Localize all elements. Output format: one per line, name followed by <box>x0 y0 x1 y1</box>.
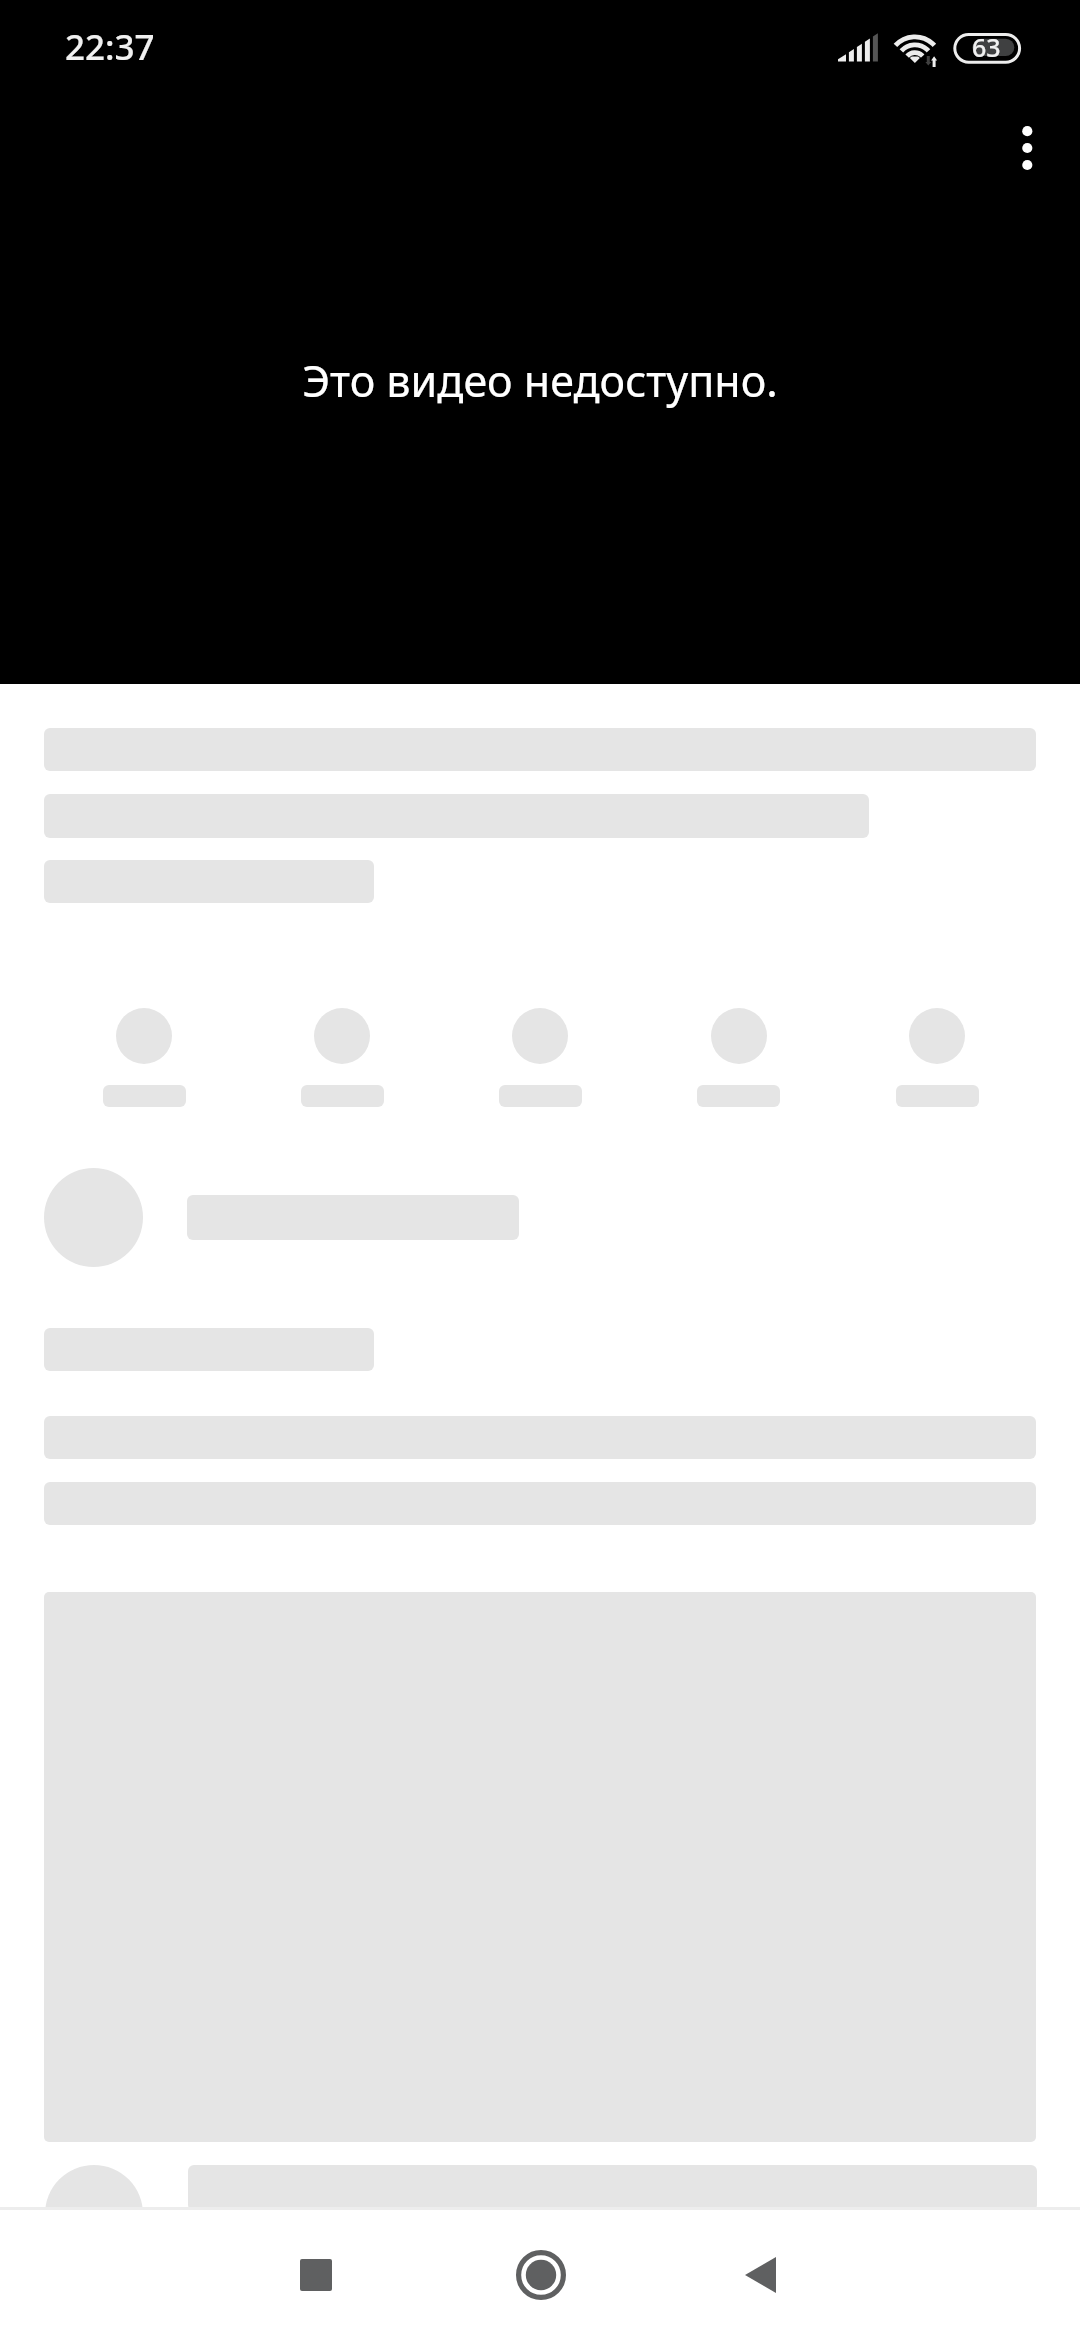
button[interactable]: Home <box>494 2228 588 2322</box>
button[interactable]: Video player <box>0 0 1080 684</box>
button[interactable]: More options <box>979 100 1075 196</box>
staticText: 63 <box>972 30 1001 64</box>
button[interactable]: Recent apps <box>269 2228 363 2322</box>
button[interactable]: Back <box>713 2228 807 2322</box>
staticText: Это видео недоступно. <box>0 351 1080 410</box>
staticText: 22:37 <box>65 23 155 71</box>
